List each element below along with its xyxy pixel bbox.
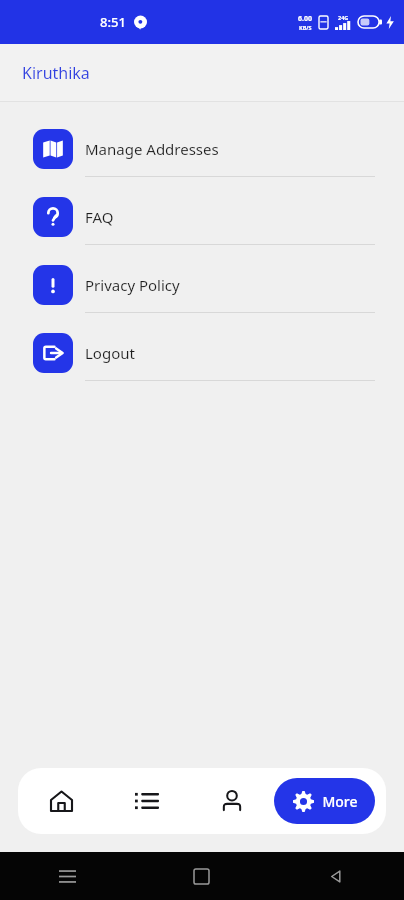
staticText: FAQ [85, 207, 114, 227]
staticText: Manage Addresses [85, 139, 219, 159]
staticText: Kiruthika [22, 62, 90, 84]
staticText: 24G [338, 14, 349, 21]
button[interactable]: Privacy Policy [0, 258, 404, 326]
button[interactable]: Profile [189, 768, 274, 834]
staticText: Logout [85, 343, 135, 363]
staticText: Privacy Policy [85, 275, 180, 295]
staticText: KB/S [299, 24, 312, 31]
button[interactable]: More [274, 778, 375, 824]
staticText: 8:51 [100, 13, 126, 31]
staticText: 6.00 [298, 14, 312, 24]
button[interactable]: FAQ [0, 190, 404, 258]
button[interactable]: Logout [0, 326, 404, 394]
button[interactable]: Orders [104, 768, 189, 834]
button[interactable]: Manage Addresses [0, 122, 404, 190]
staticText: More [322, 792, 358, 811]
button[interactable]: Home [18, 768, 104, 834]
